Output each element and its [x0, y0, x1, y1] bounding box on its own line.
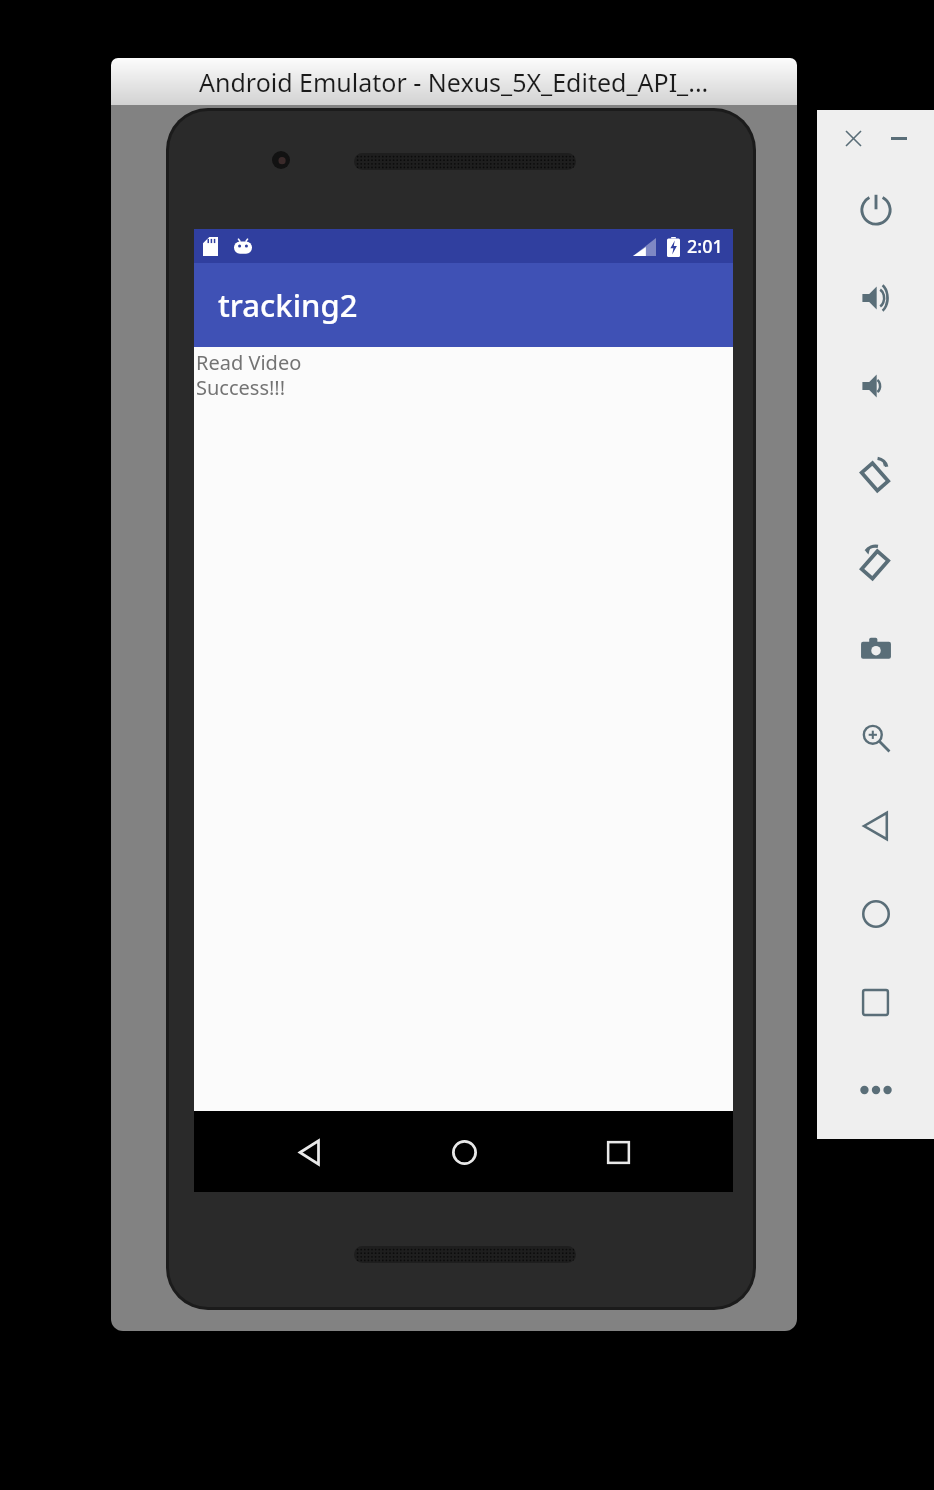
button[interactable]: Rotate right: [817, 518, 934, 606]
button[interactable]: Overview: [817, 958, 934, 1046]
button[interactable]: Rotate left: [817, 430, 934, 518]
button[interactable]: Take screenshot: [817, 606, 934, 694]
staticText: tracking2: [218, 284, 358, 326]
button[interactable]: Home: [817, 870, 934, 958]
staticText: Android Emulator - Nexus_5X_Edited_API_.…: [199, 65, 709, 99]
button[interactable]: Back: [817, 782, 934, 870]
staticText: 2:01: [687, 234, 723, 259]
button[interactable]: More: [817, 1046, 934, 1134]
staticText: Read Video Success!!!: [196, 349, 302, 401]
button[interactable]: Zoom: [817, 694, 934, 782]
button[interactable]: Volume up: [817, 254, 934, 342]
button[interactable]: Recent apps: [579, 1113, 657, 1191]
button[interactable]: Volume down: [817, 342, 934, 430]
button[interactable]: Back: [270, 1113, 348, 1191]
button[interactable]: Minimize: [879, 118, 919, 158]
button[interactable]: Home: [425, 1113, 503, 1191]
button[interactable]: Close: [833, 118, 873, 158]
button[interactable]: Power: [817, 166, 934, 254]
button[interactable]: tracking2: [194, 263, 733, 347]
